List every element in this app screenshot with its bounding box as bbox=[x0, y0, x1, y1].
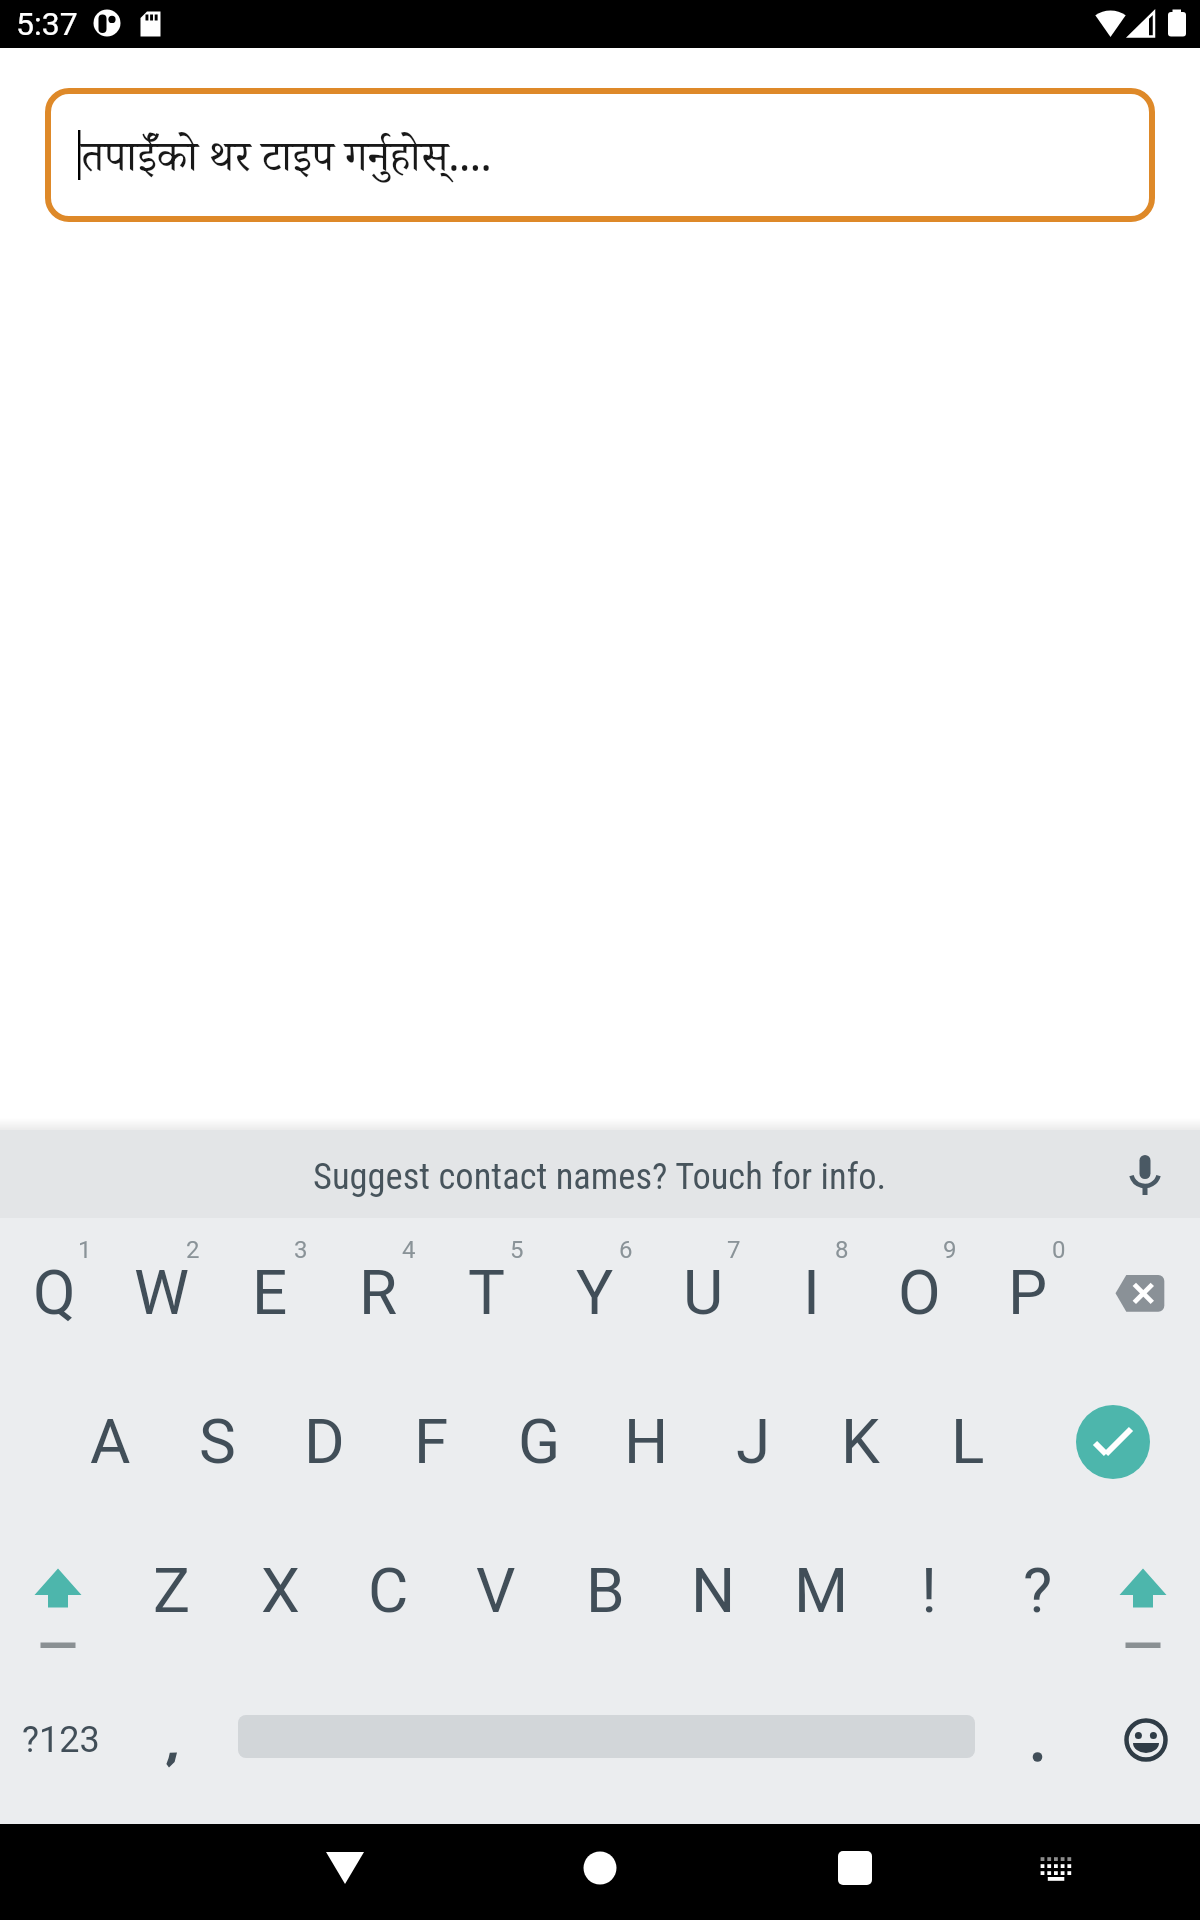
staticText: 8 bbox=[835, 1236, 849, 1264]
button[interactable] bbox=[1076, 1405, 1150, 1479]
staticText: I bbox=[803, 1256, 820, 1329]
staticText: ? bbox=[1023, 1554, 1053, 1627]
button[interactable]: ?123 bbox=[7, 1665, 115, 1814]
button[interactable] bbox=[815, 1844, 895, 1892]
button[interactable]: C bbox=[334, 1516, 442, 1665]
button[interactable] bbox=[1007, 1665, 1067, 1814]
button[interactable]: W bbox=[108, 1218, 216, 1367]
button[interactable]: M bbox=[767, 1516, 875, 1665]
staticText: 4 bbox=[402, 1236, 416, 1264]
staticText: M bbox=[794, 1554, 849, 1627]
staticText: 1 bbox=[78, 1236, 92, 1264]
button[interactable]: ! bbox=[875, 1516, 983, 1665]
button[interactable] bbox=[1089, 1516, 1197, 1665]
staticText: Q bbox=[33, 1256, 76, 1329]
staticText: U bbox=[683, 1256, 724, 1329]
button[interactable]: तपाईँको थर टाइप गर्नुहोस्.... bbox=[45, 88, 1155, 222]
button[interactable]: F bbox=[377, 1367, 485, 1516]
staticText: N bbox=[691, 1554, 736, 1627]
staticText: F bbox=[414, 1405, 449, 1478]
staticText: O bbox=[898, 1256, 941, 1329]
staticText: T bbox=[468, 1256, 505, 1329]
button[interactable]: X bbox=[226, 1516, 334, 1665]
staticText: G bbox=[518, 1405, 561, 1478]
staticText: K bbox=[841, 1405, 880, 1478]
button[interactable] bbox=[1030, 1848, 1090, 1893]
staticText: 7 bbox=[727, 1236, 741, 1264]
button[interactable] bbox=[4, 1516, 112, 1665]
staticText: S bbox=[199, 1405, 236, 1478]
button[interactable]: Y bbox=[541, 1218, 649, 1367]
staticText: A bbox=[90, 1405, 131, 1478]
button[interactable] bbox=[1082, 1218, 1200, 1367]
staticText: L bbox=[951, 1405, 985, 1478]
button[interactable]: I bbox=[757, 1218, 865, 1367]
staticText: V bbox=[476, 1554, 516, 1627]
button[interactable]: Q bbox=[0, 1218, 108, 1367]
staticText: X bbox=[261, 1554, 300, 1627]
button[interactable]: ? bbox=[984, 1516, 1092, 1665]
staticText: D bbox=[304, 1405, 345, 1478]
button[interactable]: P bbox=[974, 1218, 1082, 1367]
button[interactable]: B bbox=[551, 1516, 659, 1665]
button[interactable]: L bbox=[914, 1367, 1022, 1516]
staticText: 5:37 bbox=[16, 5, 78, 43]
button[interactable]: A bbox=[56, 1367, 164, 1516]
staticText: तपाईँको थर टाइप गर्नुहोस्.... bbox=[81, 131, 492, 198]
staticText: J bbox=[736, 1405, 771, 1478]
button[interactable]: G bbox=[485, 1367, 593, 1516]
button[interactable]: J bbox=[699, 1367, 807, 1516]
button[interactable]: Suggest contact names? Touch for info. bbox=[0, 1132, 1200, 1220]
staticText: Suggest contact names? Touch for info. bbox=[313, 1155, 887, 1198]
button[interactable]: N bbox=[659, 1516, 767, 1665]
button[interactable] bbox=[142, 1665, 202, 1814]
staticText: 5 bbox=[510, 1236, 524, 1264]
staticText: 3 bbox=[294, 1236, 308, 1264]
staticText: 9 bbox=[943, 1236, 957, 1264]
staticText: ?123 bbox=[22, 1719, 100, 1761]
button[interactable]: D bbox=[270, 1367, 378, 1516]
staticText: 6 bbox=[619, 1236, 633, 1264]
button[interactable]: R bbox=[324, 1218, 432, 1367]
button[interactable] bbox=[1115, 1144, 1175, 1204]
staticText: P bbox=[1008, 1256, 1048, 1329]
button[interactable]: S bbox=[163, 1367, 271, 1516]
staticText: Z bbox=[153, 1554, 191, 1627]
button[interactable]: T bbox=[432, 1218, 540, 1367]
button[interactable]: Z bbox=[118, 1516, 226, 1665]
button[interactable]: H bbox=[592, 1367, 700, 1516]
staticText: W bbox=[134, 1256, 190, 1329]
staticText: 2 bbox=[186, 1236, 200, 1264]
button[interactable] bbox=[1092, 1665, 1200, 1814]
staticText: R bbox=[359, 1256, 398, 1329]
button[interactable]: E bbox=[216, 1218, 324, 1367]
button[interactable]: O bbox=[865, 1218, 973, 1367]
staticText: B bbox=[586, 1554, 625, 1627]
staticText: ! bbox=[921, 1554, 937, 1627]
button[interactable] bbox=[305, 1844, 385, 1892]
button[interactable] bbox=[560, 1844, 640, 1892]
staticText: E bbox=[252, 1256, 288, 1329]
button[interactable]: V bbox=[442, 1516, 550, 1665]
staticText: 0 bbox=[1052, 1236, 1066, 1264]
staticText: H bbox=[624, 1405, 669, 1478]
staticText: C bbox=[368, 1554, 409, 1627]
button[interactable]: K bbox=[806, 1367, 914, 1516]
button[interactable]: U bbox=[649, 1218, 757, 1367]
staticText: Y bbox=[576, 1256, 614, 1329]
